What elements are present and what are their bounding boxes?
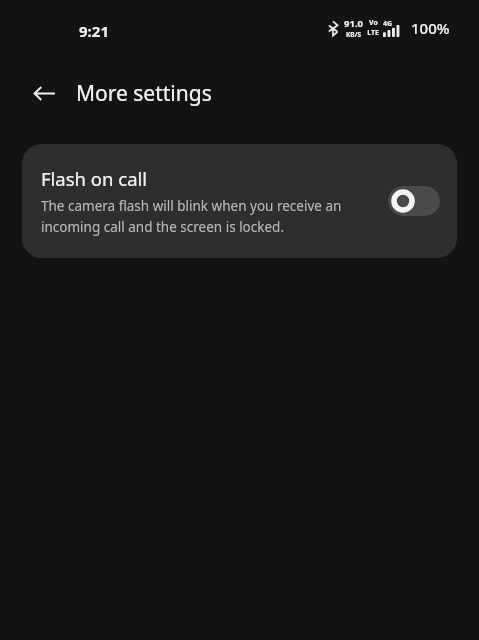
staticText: The camera flash will blink when you rec… <box>41 197 378 236</box>
staticText: More settings <box>76 79 212 108</box>
staticText: 100% <box>411 18 450 38</box>
staticText: Vo <box>369 18 378 28</box>
staticText: 9:21 <box>79 21 109 41</box>
staticText: KB/S <box>346 30 361 39</box>
staticText: Flash on call <box>41 166 148 191</box>
button[interactable]: Flash on call <box>22 144 457 258</box>
staticText: 91.0 <box>344 17 363 30</box>
staticText: LTE <box>367 28 379 38</box>
button[interactable]: Back <box>22 71 66 115</box>
button[interactable]: Flash on call toggle <box>388 186 440 216</box>
staticText: 4G <box>383 19 393 29</box>
